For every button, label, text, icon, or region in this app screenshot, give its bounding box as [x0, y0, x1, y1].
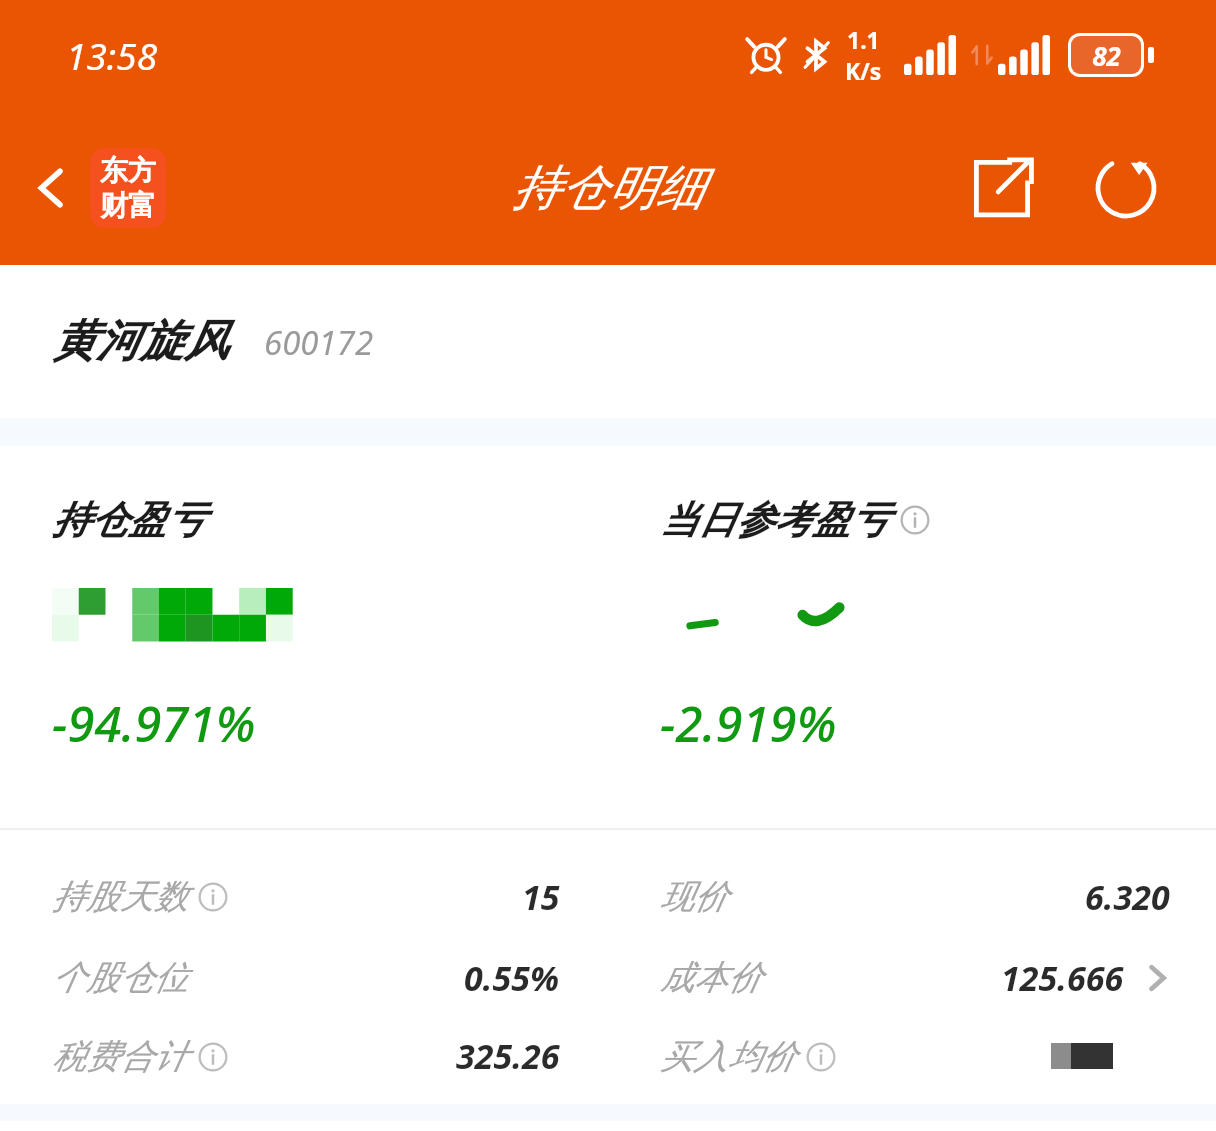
staticText: 持股天数 — [52, 875, 188, 918]
button[interactable]: 个股仓位 — [0, 937, 1216, 1018]
button[interactable]: East Money — [90, 148, 166, 228]
staticText: K/s — [845, 55, 882, 86]
staticText: 当日参考盈亏 — [660, 496, 888, 544]
staticText: 财富 — [100, 188, 156, 223]
staticText: 个股仓位 — [52, 956, 188, 999]
staticText: 税费合计 — [52, 1035, 188, 1078]
staticText: -2.919% — [660, 690, 837, 757]
staticText: 0.55% — [464, 955, 560, 1001]
staticText: 持仓明细 — [512, 158, 704, 218]
staticText: 东方 — [100, 153, 156, 188]
staticText: 13:58 — [66, 30, 158, 80]
staticText: 82 — [1092, 38, 1121, 73]
staticText: 600172 — [264, 320, 374, 365]
button[interactable]: Refresh — [1078, 140, 1174, 236]
staticText: -94.971% — [52, 690, 256, 757]
staticText: 现价 — [660, 875, 728, 918]
staticText: 325.26 — [456, 1033, 560, 1079]
button[interactable]: 税费合计 — [0, 1018, 1216, 1094]
staticText: 6.320 — [1085, 874, 1170, 920]
staticText: 黄河旋风 — [52, 314, 228, 369]
staticText: 15 — [522, 874, 560, 920]
staticText: 1.1 — [847, 24, 880, 55]
button[interactable]: Back — [14, 150, 90, 226]
button[interactable]: Share — [956, 142, 1048, 234]
staticText: 买入均价 — [660, 1035, 796, 1078]
staticText: 成本价 — [660, 956, 762, 999]
staticText: 持仓盈亏 — [52, 496, 204, 544]
button[interactable]: 持股天数 — [0, 856, 1216, 937]
staticText: 125.666 — [1001, 955, 1124, 1001]
